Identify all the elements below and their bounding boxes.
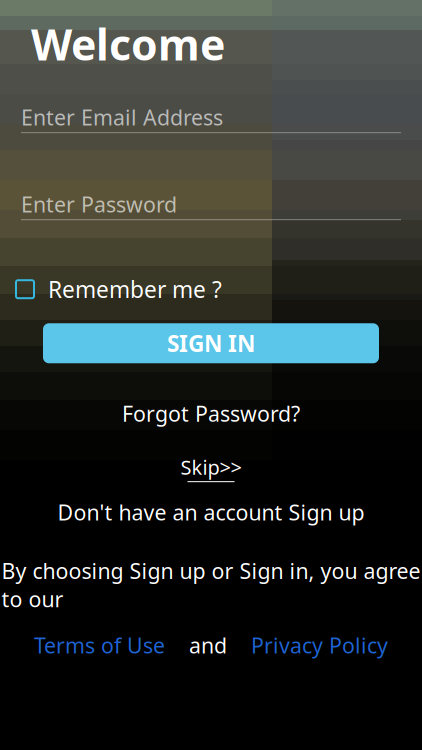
button[interactable]: Skip>>	[170, 450, 251, 486]
staticText: Remember me ?	[48, 274, 222, 304]
button[interactable]: SIGN IN	[43, 323, 379, 363]
button[interactable]: Don't have an account Sign up	[45, 494, 376, 530]
staticText: Enter Password	[21, 190, 177, 218]
staticText: By choosing Sign up or Sign in, you agre…	[1, 556, 420, 613]
staticText: Skip>>	[180, 454, 241, 480]
staticText: SIGN IN	[167, 328, 255, 358]
button[interactable]: Remember me ?	[0, 268, 422, 310]
button[interactable]: Privacy Policy	[251, 627, 388, 663]
staticText: Terms of Use	[34, 631, 165, 659]
button[interactable]: Forgot Password?	[112, 395, 310, 432]
staticText: Enter Email Address	[21, 103, 223, 131]
staticText: Privacy Policy	[251, 631, 388, 659]
button[interactable]: Terms of Use	[34, 627, 165, 663]
staticText: Welcome	[31, 15, 225, 72]
staticText: Forgot Password?	[122, 399, 300, 428]
staticText: Don't have an account Sign up	[57, 498, 364, 526]
staticText: and	[189, 631, 227, 659]
